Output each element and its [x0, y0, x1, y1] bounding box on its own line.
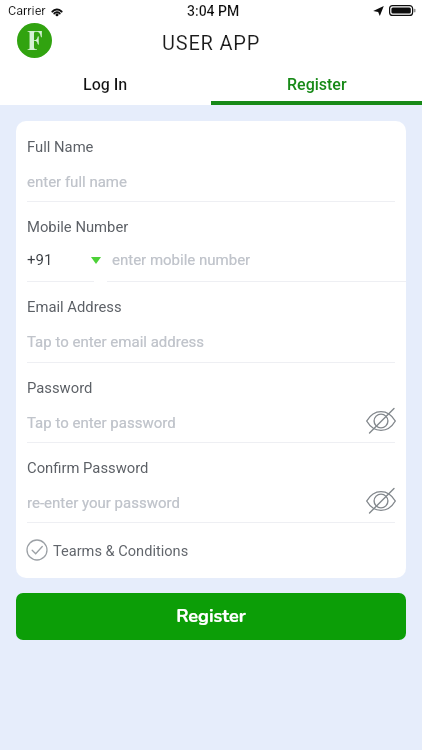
button[interactable]: App logo [17, 23, 52, 58]
staticText: Mobile Number [27, 218, 129, 235]
button[interactable]: Log In [0, 63, 211, 105]
button[interactable]: Show confirm password [364, 487, 398, 515]
button[interactable]: Register [211, 63, 422, 105]
staticText: Tearms & Conditions [53, 542, 189, 559]
staticText: enter full name [27, 173, 127, 191]
staticText: +91 [27, 251, 53, 269]
staticText: Email Address [27, 298, 122, 315]
staticText: USER APP [162, 31, 261, 54]
staticText: Tap to enter password [27, 414, 176, 432]
button[interactable]: Register [16, 593, 406, 640]
staticText: Tap to enter email address [27, 333, 205, 351]
button[interactable]: Tearms & Conditions [26, 539, 189, 561]
staticText: Carrier [8, 3, 46, 18]
staticText: Register [176, 604, 246, 629]
button[interactable]: Show password [364, 407, 398, 435]
staticText: Log In [83, 75, 128, 94]
staticText: Register [287, 75, 347, 94]
staticText: enter mobile number [112, 251, 251, 269]
staticText: 3:04 PM [187, 3, 240, 19]
staticText: Confirm Password [27, 459, 149, 476]
staticText: Full Name [27, 138, 94, 155]
staticText: F [27, 23, 43, 57]
staticText: re-enter your password [27, 494, 180, 512]
staticText: Password [27, 379, 93, 396]
